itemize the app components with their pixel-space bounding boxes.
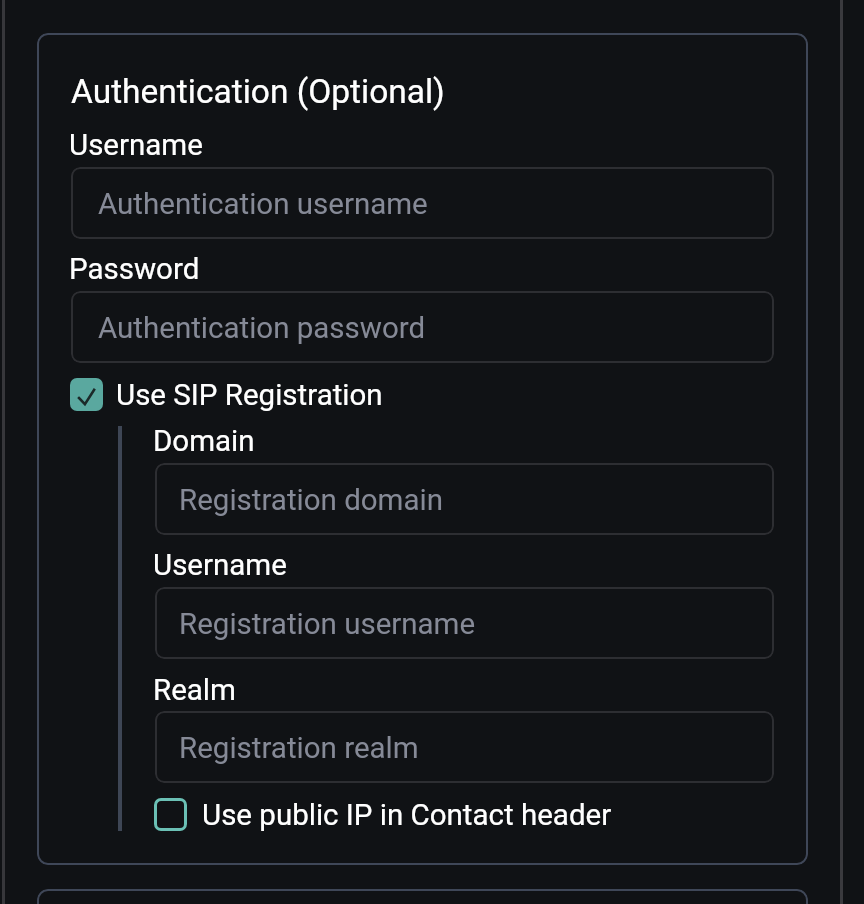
staticText: Domain [153,424,255,459]
staticText: Authentication (Optional) [71,72,445,111]
staticText: Username [69,128,203,163]
staticText: Authentication password [98,311,426,346]
staticText: Username [153,548,287,583]
button[interactable]: Registration domain [155,463,774,535]
button[interactable]: Use public IP in Contact header [154,798,615,831]
button[interactable]: Authentication username [71,167,774,239]
staticText: Use public IP in Contact header [202,798,612,831]
staticText: Registration realm [179,731,419,766]
staticText: Authentication username [98,187,428,222]
button[interactable]: Registration username [155,587,774,659]
button[interactable]: Registration realm [155,711,774,783]
button[interactable]: Authentication password [71,291,774,363]
staticText: Password [69,252,200,287]
staticText: Registration username [179,607,476,642]
staticText: Realm [153,673,236,708]
staticText: Use SIP Registration [116,378,383,411]
button[interactable]: Use SIP Registration [70,378,388,411]
staticText: Registration domain [179,483,444,518]
